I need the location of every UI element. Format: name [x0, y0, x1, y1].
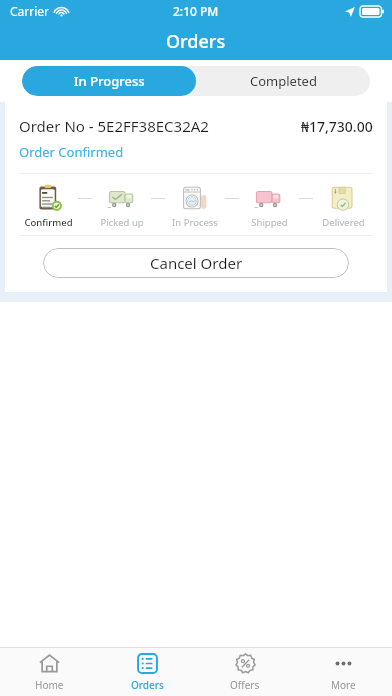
staticText: Confirmed [24, 216, 73, 229]
button[interactable]: More [294, 648, 392, 696]
staticText: Home [35, 678, 64, 692]
staticText: In Progress [74, 72, 145, 90]
staticText: Cancel Order [150, 253, 243, 273]
button[interactable]: Orders [98, 648, 196, 696]
staticText: Delivered [322, 216, 365, 229]
staticText: Orders [166, 29, 226, 54]
button[interactable]: Completed [196, 66, 370, 96]
button[interactable]: In Progress [22, 66, 196, 96]
button[interactable]: Home [0, 648, 98, 696]
staticText: ₦17,730.00 [301, 117, 373, 136]
staticText: Order No - 5E2FF38EC32A2 [19, 116, 209, 136]
button[interactable]: Offers [196, 648, 294, 696]
staticText: Picked up [100, 216, 144, 229]
staticText: Shipped [251, 216, 288, 229]
staticText: More [331, 678, 356, 692]
staticText: Offers [230, 678, 260, 692]
button[interactable]: Cancel Order [43, 248, 349, 278]
staticText: Order Confirmed [19, 143, 124, 161]
staticText: 2:10 PM [173, 3, 219, 19]
staticText: Orders [131, 678, 164, 692]
staticText: Completed [250, 72, 317, 90]
staticText: Carrier [10, 3, 50, 19]
staticText: In Process [172, 216, 218, 229]
